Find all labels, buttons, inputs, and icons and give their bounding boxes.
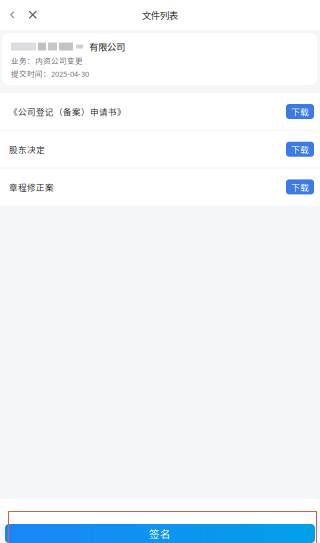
button[interactable]: 签名: [0, 524, 320, 543]
button[interactable]: Back: [2, 0, 23, 30]
staticText: 签名: [149, 526, 171, 541]
staticText: 股东决定: [9, 143, 45, 155]
staticText: 有限公司: [89, 40, 125, 53]
staticText: 提交时间：2025-04-30: [11, 68, 89, 79]
staticText: 下载: [291, 180, 309, 193]
staticText: 《公司登记（备案）申请书》: [9, 105, 126, 118]
button[interactable]: 下载: [286, 179, 314, 194]
staticText: 下载: [291, 105, 309, 118]
button[interactable]: Close: [23, 0, 43, 30]
staticText: 文件列表: [142, 8, 178, 22]
staticText: 业务：内资公司变更: [11, 55, 83, 66]
button[interactable]: 下载: [286, 104, 314, 119]
staticText: 章程修正案: [9, 181, 54, 193]
staticText: 下载: [291, 143, 309, 155]
button[interactable]: 下载: [286, 142, 314, 157]
